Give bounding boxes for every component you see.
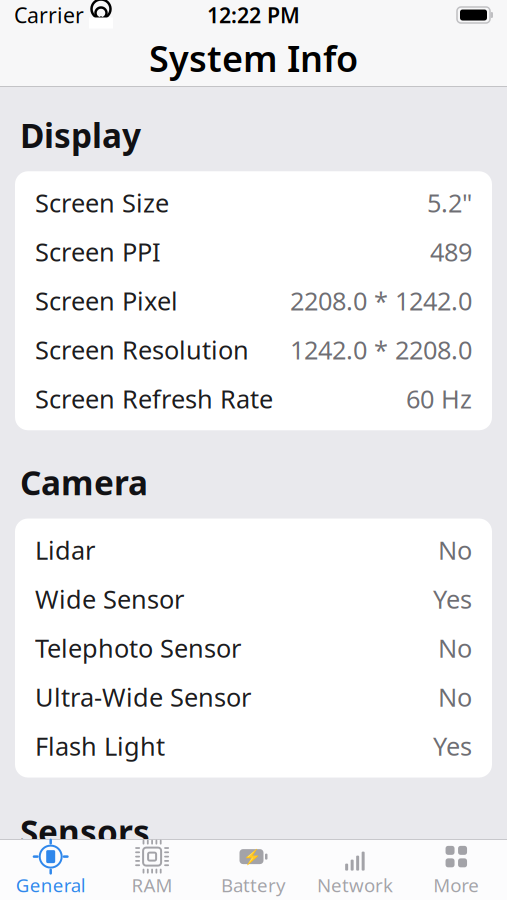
staticText: Display: [20, 113, 141, 157]
staticText: Wide Sensor: [35, 582, 184, 616]
staticText: 12:22 PM: [207, 1, 300, 29]
staticText: Screen PPI: [35, 235, 161, 268]
staticText: No: [438, 533, 472, 567]
button[interactable]: More: [406, 837, 507, 900]
staticText: RAM: [132, 873, 173, 897]
staticText: Camera: [20, 460, 148, 505]
staticText: 5.2": [427, 186, 472, 219]
staticText: Network: [317, 873, 393, 897]
staticText: No: [438, 631, 472, 665]
button[interactable]: Network: [304, 837, 406, 900]
button[interactable]: ⚡: [203, 837, 304, 900]
staticText: 489: [430, 235, 472, 268]
staticText: Yes: [433, 582, 472, 616]
staticText: 60 Hz: [406, 382, 472, 415]
staticText: System Info: [149, 34, 358, 82]
staticText: Telephoto Sensor: [35, 631, 241, 665]
staticText: Battery: [221, 873, 286, 897]
button[interactable]: General: [0, 837, 101, 900]
staticText: Ultra-Wide Sensor: [35, 680, 251, 714]
staticText: Carrier: [14, 1, 84, 29]
staticText: No: [438, 680, 472, 714]
staticText: Yes: [433, 729, 472, 763]
staticText: More: [433, 873, 479, 897]
staticText: Screen Size: [35, 186, 169, 219]
staticText: General: [16, 873, 86, 897]
staticText: ⚡: [242, 848, 260, 865]
staticText: Flash Light: [35, 729, 165, 763]
staticText: Screen Resolution: [35, 333, 249, 366]
staticText: 1242.0 * 2208.0: [290, 333, 472, 366]
staticText: Screen Pixel: [35, 284, 178, 317]
staticText: Lidar: [35, 533, 95, 567]
staticText: Sensors: [20, 809, 150, 854]
button[interactable]: RAM: [101, 837, 203, 900]
staticText: Screen Refresh Rate: [35, 382, 273, 415]
staticText: 2208.0 * 1242.0: [290, 284, 472, 317]
